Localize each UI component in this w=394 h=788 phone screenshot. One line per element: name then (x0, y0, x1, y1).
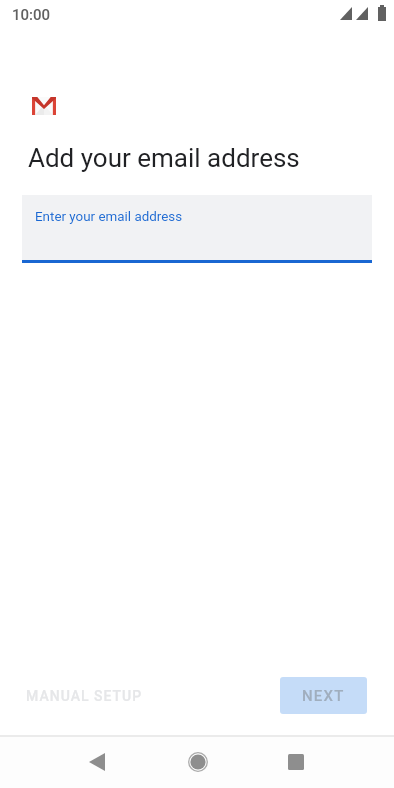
button[interactable]: Enter your email address (22, 195, 372, 263)
button[interactable]: Home (172, 737, 221, 788)
button[interactable]: Recent apps (271, 737, 320, 788)
staticText: NEXT (302, 687, 345, 705)
staticText: 10:00 (12, 6, 51, 24)
button[interactable]: NEXT (280, 677, 367, 714)
staticText: Enter your email address (35, 209, 183, 225)
button[interactable]: Back (74, 737, 123, 788)
staticText: Add your email address (28, 143, 300, 173)
button[interactable]: MANUAL SETUP (14, 672, 155, 720)
staticText: MANUAL SETUP (26, 688, 143, 704)
